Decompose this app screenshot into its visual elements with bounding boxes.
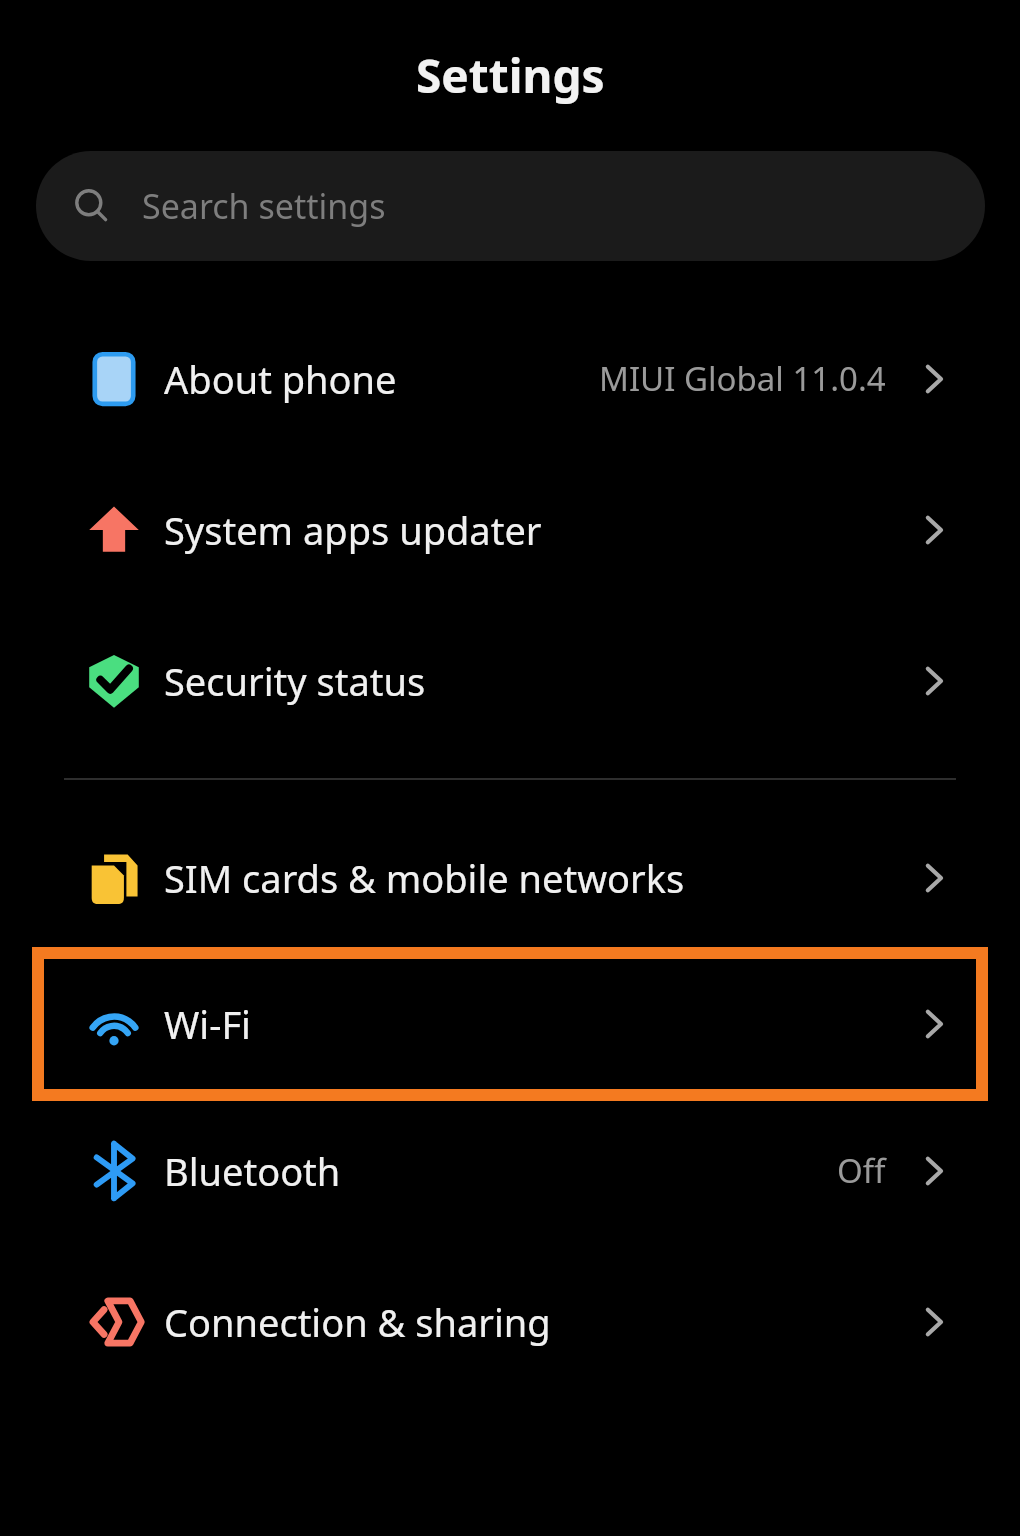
- button[interactable]: Connection & sharing: [0, 1246, 1020, 1397]
- button[interactable]: Wi-Fi: [64, 953, 956, 1095]
- staticText: Search settings: [142, 183, 386, 229]
- staticText: Security status: [164, 655, 426, 707]
- staticText: System apps updater: [164, 504, 542, 556]
- button[interactable]: Search settings: [36, 151, 985, 261]
- button[interactable]: Security status: [0, 605, 1020, 756]
- staticText: About phone: [164, 353, 397, 405]
- button[interactable]: Bluetooth: [0, 1095, 1020, 1246]
- button[interactable]: System apps updater: [0, 454, 1020, 605]
- button[interactable]: About phone: [0, 303, 1020, 454]
- staticText: Wi-Fi: [164, 998, 251, 1050]
- staticText: Bluetooth: [164, 1145, 341, 1197]
- staticText: Connection & sharing: [164, 1296, 551, 1348]
- staticText: Off: [837, 1148, 886, 1193]
- button[interactable]: SIM cards & mobile networks: [0, 802, 1020, 953]
- staticText: MIUI Global 11.0.4: [599, 356, 886, 401]
- staticText: Settings: [416, 44, 605, 107]
- staticText: SIM cards & mobile networks: [164, 852, 685, 904]
